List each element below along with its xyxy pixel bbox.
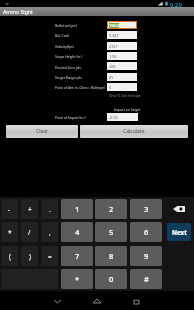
staticText: Impact on Target	[114, 107, 141, 111]
button[interactable]: 8	[95, 246, 127, 266]
button[interactable]: Clear	[6, 125, 78, 138]
staticText: +	[28, 205, 32, 214]
staticText: Next	[172, 228, 187, 236]
staticText: Clear	[36, 128, 49, 135]
button[interactable]: .	[41, 199, 58, 219]
button[interactable]: 5	[95, 222, 127, 242]
button[interactable]: 0.447	[107, 31, 137, 39]
staticText: 1	[75, 204, 80, 214]
button[interactable]: 6	[130, 222, 162, 242]
staticText: 2	[109, 204, 114, 214]
button[interactable]: Backspace	[164, 199, 194, 219]
button[interactable]: 1	[61, 199, 93, 219]
button[interactable]: 4	[61, 222, 93, 242]
button[interactable]: /	[21, 222, 38, 242]
staticText: Velocity(fps)	[55, 44, 74, 48]
button[interactable]: Calculate	[80, 125, 188, 138]
staticText: 2727	[109, 44, 118, 49]
staticText: 25	[109, 75, 114, 80]
staticText: 0	[109, 274, 114, 284]
staticText: #	[144, 274, 149, 284]
button[interactable]: ,	[41, 222, 58, 242]
button[interactable]: 25	[107, 73, 137, 81]
button[interactable]: )	[21, 246, 38, 266]
button[interactable]: 1.55	[107, 52, 137, 60]
staticText: Desired Zero yds.	[55, 65, 82, 69]
button[interactable]: 168.0	[108, 22, 136, 28]
staticText: Scope Height (in.)	[55, 54, 83, 58]
button[interactable]: Recents	[124, 294, 150, 308]
button[interactable]: (	[1, 246, 18, 266]
staticText: Point of Impact (in.)	[55, 115, 86, 119]
button[interactable]: =	[41, 246, 58, 266]
staticText: *	[75, 274, 80, 284]
staticText: Calculate	[123, 128, 145, 135]
button[interactable]: 200	[107, 62, 137, 70]
staticText: Point of Aim in. (Zero = Bullseye)	[55, 85, 105, 89]
button[interactable]: #	[130, 269, 162, 289]
staticText: *	[8, 228, 12, 237]
button[interactable]: *	[61, 269, 93, 289]
button[interactable]: *	[1, 222, 18, 242]
staticText: 0	[109, 85, 112, 90]
staticText: 8	[109, 251, 114, 261]
staticText: -	[8, 205, 11, 214]
button[interactable]: 0	[95, 269, 127, 289]
button[interactable]: 2727	[107, 42, 137, 50]
staticText: 0.447	[109, 33, 119, 38]
button[interactable]: -0.16	[107, 113, 138, 121]
staticText: 9	[144, 251, 149, 261]
staticText: Bullet wt.(grn)	[55, 23, 77, 27]
staticText: (0) or (1) Zero for Scope	[109, 94, 141, 98]
button[interactable]: 2	[95, 199, 127, 219]
staticText: ,	[49, 228, 51, 237]
button[interactable]: Back	[44, 294, 70, 308]
button[interactable]: 0	[107, 83, 137, 91]
button[interactable]: +	[21, 199, 38, 219]
staticText: 4	[75, 227, 80, 237]
staticText: Target Range yds	[55, 75, 82, 79]
button[interactable]: Home	[84, 294, 110, 308]
staticText: 6	[144, 227, 149, 237]
staticText: 168.0	[109, 23, 119, 28]
staticText: (	[9, 252, 11, 261]
staticText: -0.16	[109, 115, 118, 120]
staticText: 200	[109, 64, 116, 69]
staticText: .	[49, 205, 51, 214]
button[interactable]: 7	[61, 246, 93, 266]
staticText: 5	[109, 227, 114, 237]
button[interactable]: 9	[130, 246, 162, 266]
staticText: Ammo Sight	[3, 8, 33, 15]
staticText: /	[28, 228, 31, 237]
button[interactable]: 3	[130, 199, 162, 219]
staticText: 9:29	[170, 1, 182, 8]
staticText: 1.55	[109, 54, 117, 59]
staticText: =	[48, 252, 52, 261]
button[interactable]: -	[1, 199, 18, 219]
staticText: 3	[144, 204, 149, 214]
staticText: 7	[75, 251, 80, 261]
staticText: Bal. Coef.	[55, 33, 70, 37]
staticText: )	[29, 252, 31, 261]
button[interactable]: Next	[167, 223, 191, 241]
